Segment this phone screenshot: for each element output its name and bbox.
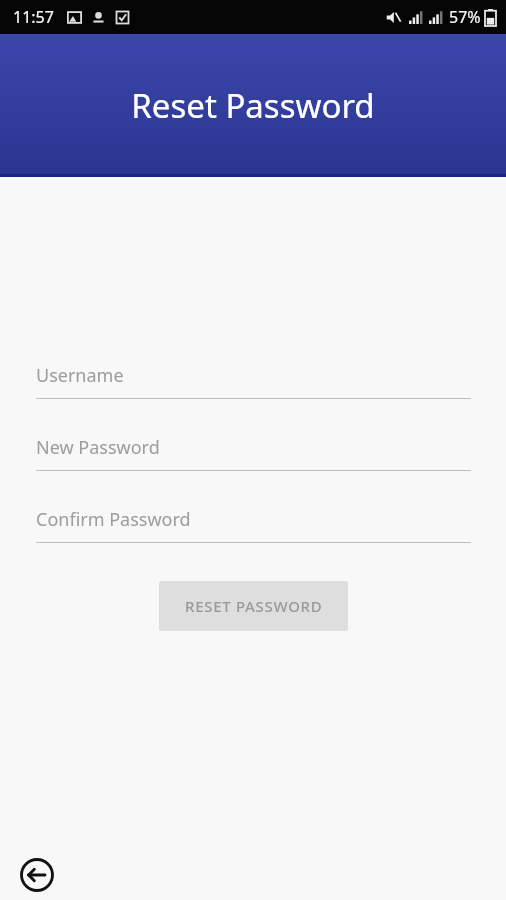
staticText: Reset Password: [131, 83, 375, 128]
button[interactable]: Username: [36, 363, 471, 399]
button[interactable]: RESET PASSWORD: [159, 581, 348, 631]
staticText: 11:57: [13, 6, 54, 28]
button[interactable]: New Password: [36, 435, 471, 471]
staticText: Confirm Password: [36, 507, 191, 532]
button[interactable]: Confirm Password: [36, 507, 471, 543]
staticText: 57%: [449, 6, 481, 28]
staticText: RESET PASSWORD: [185, 596, 323, 616]
staticText: New Password: [36, 435, 160, 460]
staticText: Username: [36, 363, 124, 388]
button[interactable]: Back: [17, 855, 57, 895]
